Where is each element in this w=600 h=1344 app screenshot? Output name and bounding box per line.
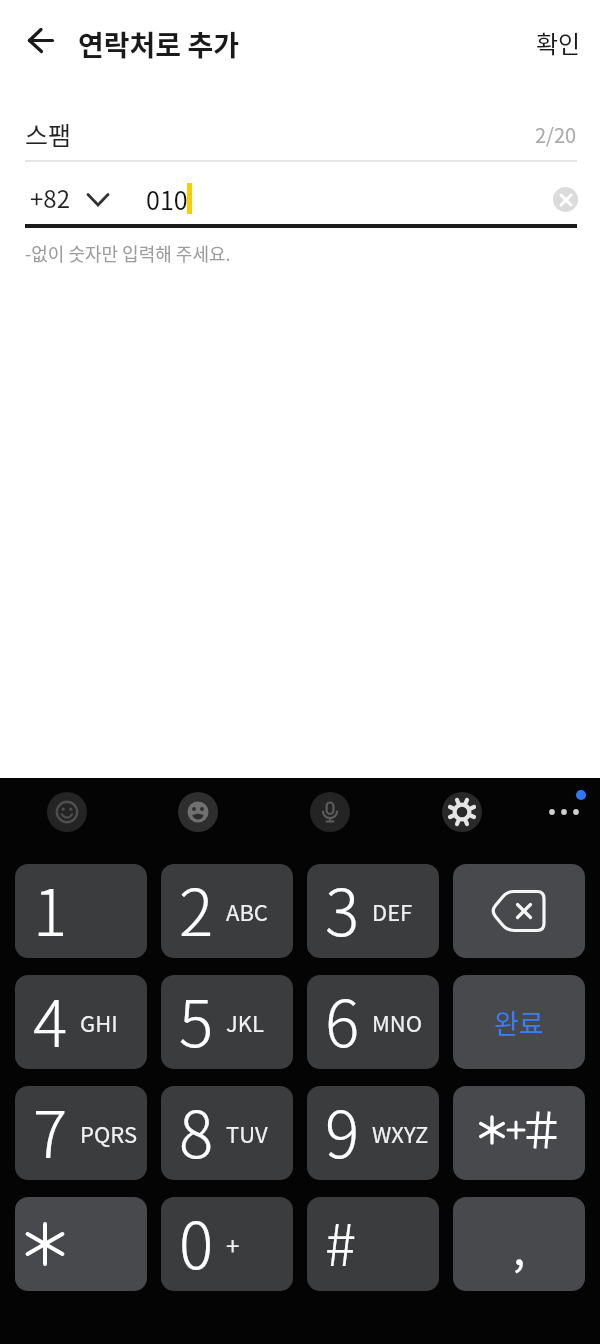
button[interactable]: 7 <box>15 1086 147 1180</box>
button[interactable]: 8 <box>161 1086 293 1180</box>
staticText: GHI <box>80 1006 118 1038</box>
staticText: 0 <box>179 1197 214 1288</box>
button[interactable] <box>47 792 87 832</box>
staticText: + <box>226 1227 240 1262</box>
staticText: PQRS <box>80 1117 138 1149</box>
staticText: 010 <box>146 181 188 216</box>
staticText: 5 <box>179 975 214 1066</box>
staticText: 확인 <box>536 25 581 60</box>
staticText: 8 <box>179 1086 214 1177</box>
staticText: JKL <box>226 1006 264 1038</box>
staticText: +82 <box>30 180 70 213</box>
button[interactable]: 완료 <box>453 975 585 1069</box>
button[interactable]: 6 <box>307 975 439 1069</box>
button[interactable] <box>453 864 585 958</box>
staticText: 2/20 <box>535 120 577 149</box>
staticText: 스팸 <box>25 116 72 150</box>
staticText: 완료 <box>494 1003 544 1042</box>
staticText: 9 <box>325 1086 360 1177</box>
staticText: 3 <box>325 864 360 955</box>
button[interactable] <box>310 792 350 832</box>
staticText: WXYZ <box>372 1117 429 1149</box>
button[interactable]: 9 <box>307 1086 439 1180</box>
staticText: 7 <box>33 1086 68 1177</box>
button[interactable]: 확인 <box>501 24 581 60</box>
button[interactable] <box>542 792 586 832</box>
button[interactable] <box>15 1197 147 1291</box>
staticText: -없이 숫자만 입력해 주세요. <box>25 240 231 266</box>
staticText: 6 <box>325 975 360 1066</box>
button[interactable] <box>453 1086 585 1180</box>
staticText: 4 <box>33 975 68 1066</box>
button[interactable]: 0 <box>161 1197 293 1291</box>
button[interactable]: 4 <box>15 975 147 1069</box>
staticText: TUV <box>226 1117 268 1149</box>
button[interactable] <box>20 20 60 60</box>
button[interactable]: 5 <box>161 975 293 1069</box>
staticText: ABC <box>226 895 268 927</box>
staticText: 1 <box>33 864 68 955</box>
button[interactable]: # <box>307 1197 439 1291</box>
staticText: DEF <box>372 895 413 927</box>
button[interactable]: 1 <box>15 864 147 958</box>
button[interactable] <box>442 792 482 832</box>
button[interactable]: +82 <box>30 180 70 213</box>
button[interactable]: 3 <box>307 864 439 958</box>
button[interactable]: 2 <box>161 864 293 958</box>
button[interactable]: , <box>453 1197 585 1291</box>
staticText: , <box>513 1214 526 1278</box>
button[interactable] <box>553 187 578 212</box>
staticText: 2 <box>179 864 214 955</box>
staticText: 연락처로 추가 <box>78 24 239 60</box>
staticText: # <box>325 1199 357 1283</box>
staticText: MNO <box>372 1006 423 1038</box>
button[interactable] <box>178 792 218 832</box>
